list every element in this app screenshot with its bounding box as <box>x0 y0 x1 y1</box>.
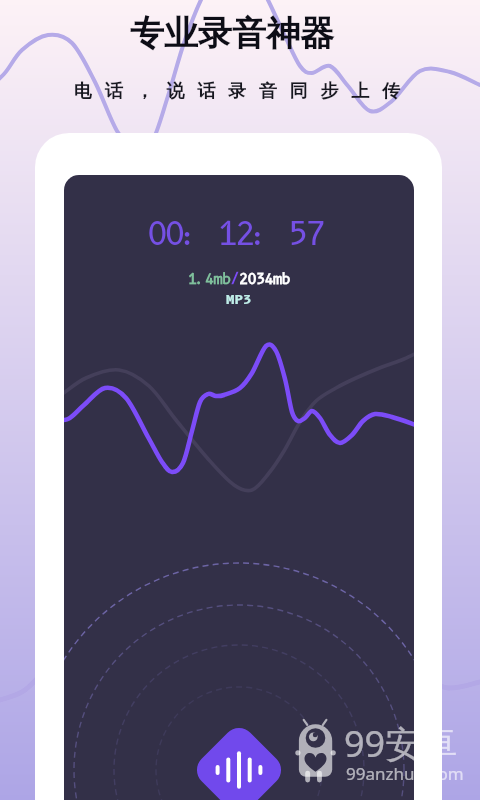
staticText: 00: 12: 57 <box>147 214 324 253</box>
staticText: MP3 <box>226 291 252 307</box>
button[interactable]: Record <box>179 710 299 800</box>
staticText: 99安卓 <box>344 719 458 768</box>
staticText: 1.4mb/2034mb <box>188 270 290 287</box>
staticText: 99anzhuo.com <box>346 762 464 785</box>
staticText: 电话，说话录音同步上传 <box>74 80 413 103</box>
staticText: 专业录音神器 <box>130 12 334 55</box>
